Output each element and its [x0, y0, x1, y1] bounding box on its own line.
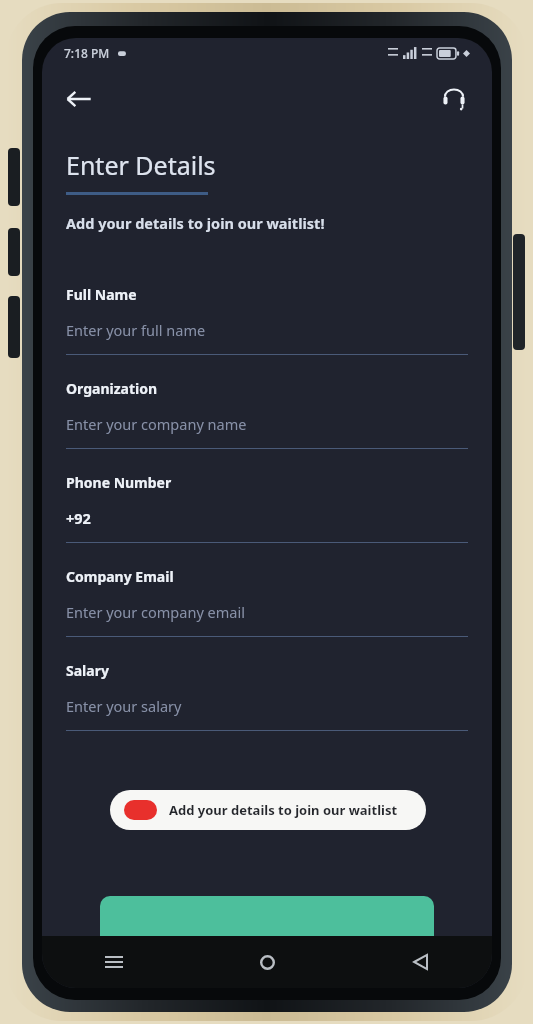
staticText: Enter your company email	[66, 602, 245, 622]
staticText: Company Email	[66, 567, 174, 586]
button[interactable]: Add your details to join our waitlist	[110, 790, 426, 830]
staticText: Organization	[66, 379, 158, 398]
staticText: 7:18 PM	[64, 45, 110, 61]
button[interactable]: Support	[432, 77, 476, 121]
staticText: Add your details to join our waitlist!	[66, 213, 325, 233]
button[interactable]: Company Email	[42, 567, 492, 661]
button[interactable]: Salary	[42, 661, 492, 755]
staticText: Add your details to join our waitlist	[169, 801, 398, 819]
staticText: Full Name	[66, 285, 137, 304]
button[interactable]: Full Name	[42, 285, 492, 379]
button[interactable]: Home	[247, 942, 287, 982]
button[interactable]: Back	[56, 76, 102, 122]
staticText: Enter your salary	[66, 696, 182, 716]
button[interactable]: Phone Number	[42, 473, 492, 567]
button[interactable]: Back	[400, 942, 440, 982]
staticText: +92	[66, 508, 91, 528]
staticText: Phone Number	[66, 473, 172, 492]
button[interactable]	[100, 896, 434, 936]
button[interactable]: Recent apps	[94, 942, 134, 982]
staticText: Enter your company name	[66, 414, 247, 434]
button[interactable]: Organization	[42, 379, 492, 473]
staticText: Enter Details	[66, 148, 216, 182]
staticText: Salary	[66, 661, 109, 680]
staticText: Enter your full name	[66, 320, 206, 340]
